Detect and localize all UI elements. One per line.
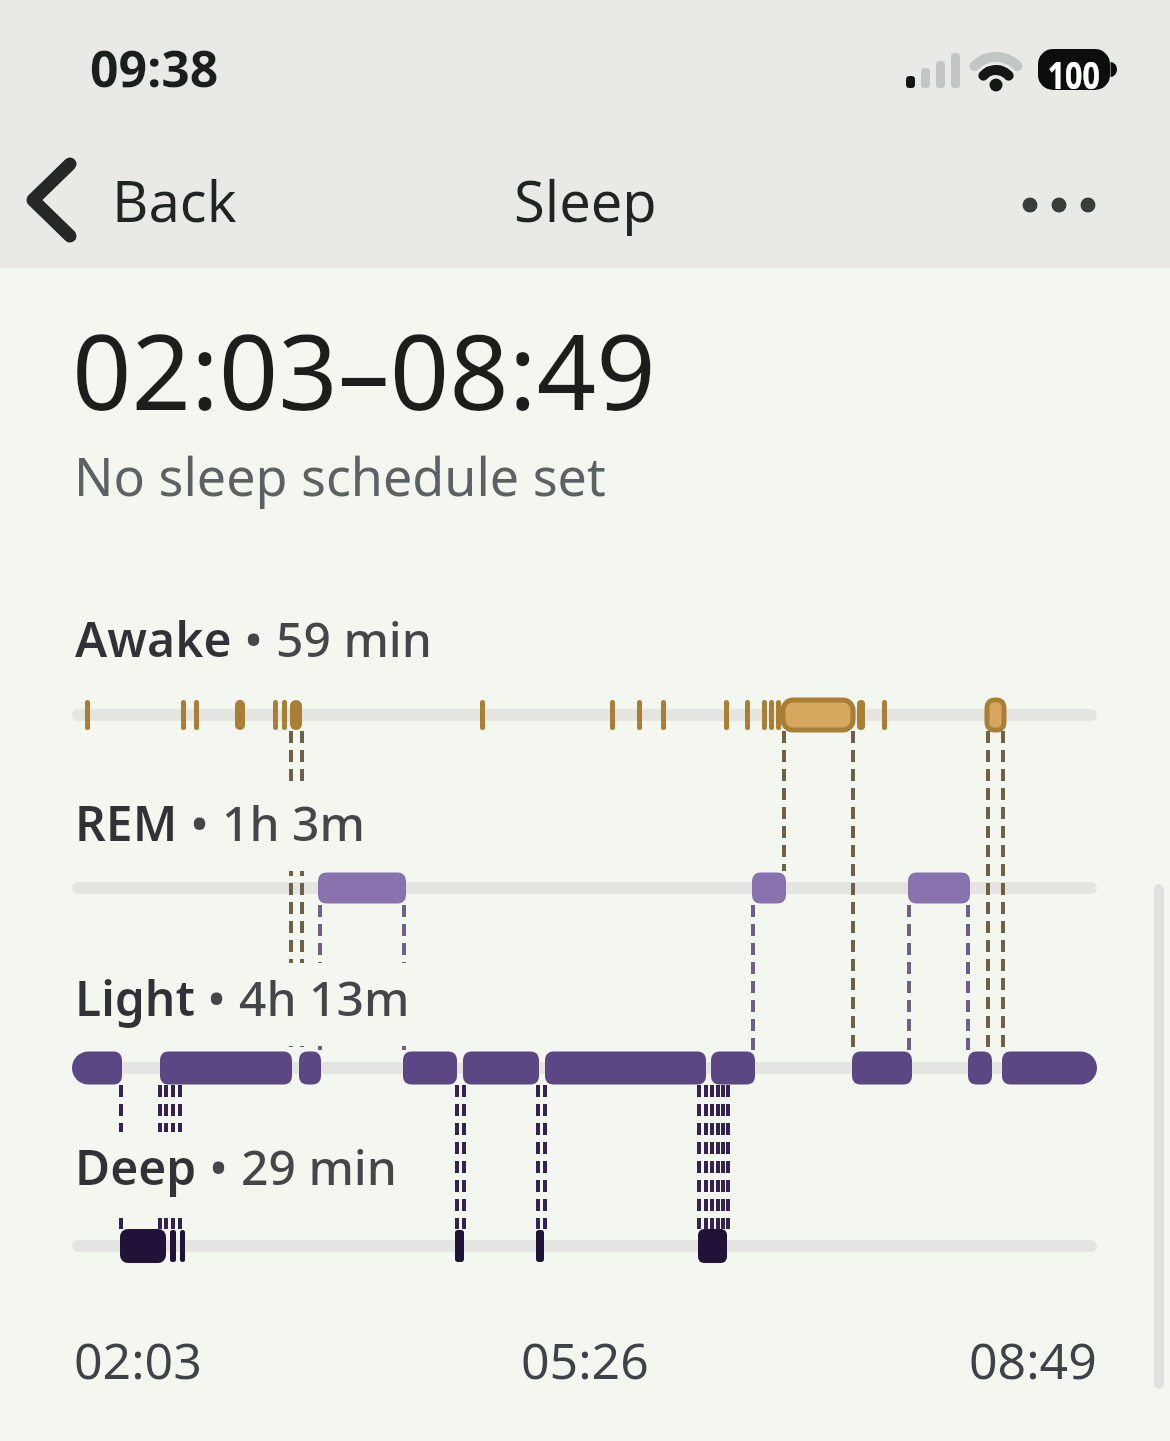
button[interactable]	[1000, 170, 1110, 240]
staticText: Back	[112, 162, 237, 238]
button[interactable]: Back	[20, 160, 237, 240]
staticText: 59 min	[276, 606, 432, 671]
staticText: 05:26	[521, 1326, 649, 1394]
staticText: •	[195, 965, 239, 1030]
staticText: 29 min	[241, 1134, 397, 1199]
staticText: 08:49	[969, 1326, 1097, 1394]
staticText: 1h 3m	[222, 790, 365, 855]
staticText: 4h 13m	[239, 965, 410, 1030]
staticText: 02:03	[74, 1326, 202, 1394]
staticText: 09:38	[90, 34, 219, 102]
staticText: •	[178, 790, 222, 855]
staticText: Light	[75, 965, 195, 1030]
staticText: •	[232, 606, 276, 671]
staticText: Awake	[75, 606, 232, 671]
staticText: 02:03–08:49	[72, 299, 656, 441]
staticText: •	[197, 1134, 241, 1199]
staticText: REM	[75, 790, 178, 855]
staticText: Sleep	[514, 162, 657, 238]
staticText: No sleep schedule set	[74, 440, 606, 511]
staticText: 100	[1048, 49, 1100, 90]
staticText: Deep	[75, 1134, 197, 1199]
